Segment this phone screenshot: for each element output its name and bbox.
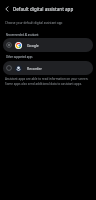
- staticText: Other supported apps: [6, 55, 33, 58]
- button[interactable]: Google: [3, 38, 93, 52]
- staticText: Default digital assistant app: [13, 6, 74, 12]
- staticText: Google: [27, 43, 39, 48]
- button[interactable]: Navigate up: [1, 3, 13, 15]
- staticText: Choose your default digital assistant ap…: [5, 21, 63, 25]
- button[interactable]: Recorder: [3, 61, 93, 75]
- staticText: Recommended AI assistant: [6, 33, 39, 36]
- staticText: Assistant apps are able to read informat…: [5, 77, 93, 86]
- staticText: Recorder: [27, 66, 42, 71]
